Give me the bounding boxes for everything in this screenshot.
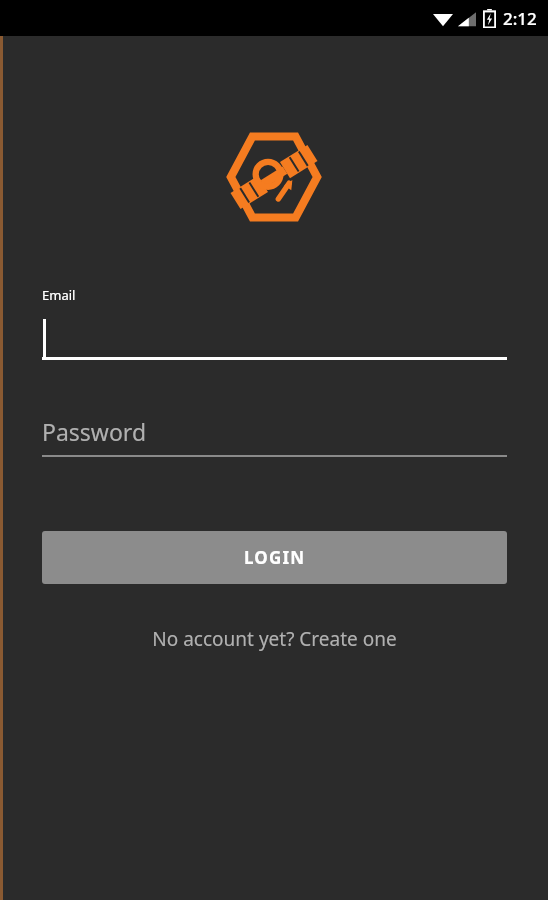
button[interactable]: Email [42, 286, 507, 360]
button[interactable]: Password [42, 414, 507, 457]
other: App logo [220, 133, 328, 221]
staticText: 2:12 [503, 7, 537, 30]
staticText: Password [42, 416, 147, 447]
staticText: No account yet? Create one [152, 626, 397, 652]
button[interactable]: LOGIN [42, 531, 507, 584]
button[interactable]: No account yet? Create one [142, 622, 407, 656]
staticText: LOGIN [244, 546, 306, 569]
staticText: Email [42, 286, 76, 304]
